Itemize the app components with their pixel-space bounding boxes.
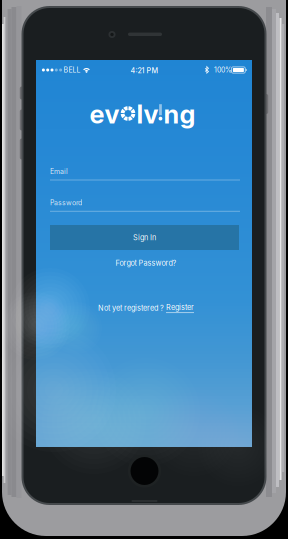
staticText: ng xyxy=(163,99,195,130)
staticText: Register xyxy=(166,303,194,312)
staticText: Password xyxy=(50,199,82,207)
staticText: Not yet registered ? xyxy=(98,304,166,312)
staticText: Email xyxy=(50,167,68,176)
staticText: Sign In xyxy=(133,233,156,242)
staticText: 4:21 PM xyxy=(130,66,158,75)
button[interactable]: Register xyxy=(166,303,194,313)
staticText: 100% xyxy=(214,66,232,74)
staticText: BELL xyxy=(63,66,80,74)
button[interactable]: Forgot Password? xyxy=(101,257,191,269)
staticText: ev xyxy=(89,99,119,130)
staticText: lv xyxy=(136,99,158,130)
button[interactable]: Sign In xyxy=(50,225,239,250)
staticText: Forgot Password? xyxy=(115,259,176,267)
